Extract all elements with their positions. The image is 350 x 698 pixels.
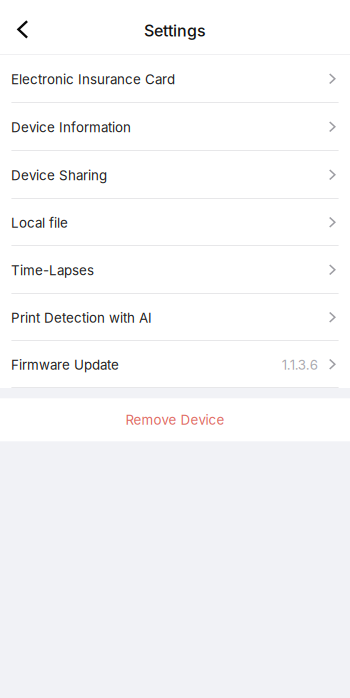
button[interactable]: Electronic Insurance Card xyxy=(0,55,350,103)
button[interactable]: Firmware Update xyxy=(0,341,350,388)
staticText: Print Detection with AI xyxy=(11,310,152,326)
button[interactable]: Remove Device xyxy=(0,398,350,441)
staticText: Remove Device xyxy=(125,412,224,428)
button[interactable]: Device Sharing xyxy=(0,151,350,199)
staticText: Local file xyxy=(11,215,68,231)
staticText: Electronic Insurance Card xyxy=(11,71,175,87)
staticText: Firmware Update xyxy=(11,357,119,373)
button[interactable]: Local file xyxy=(0,199,350,246)
staticText: Settings xyxy=(144,21,206,40)
staticText: 1.1.3.6 xyxy=(282,357,318,373)
staticText: Device Sharing xyxy=(11,167,107,183)
button[interactable]: Print Detection with AI xyxy=(0,294,350,341)
button[interactable]: Device Information xyxy=(0,103,350,151)
staticText: Device Information xyxy=(11,119,131,135)
staticText: Time-Lapses xyxy=(11,262,94,278)
button[interactable]: Back xyxy=(0,0,42,54)
button[interactable]: Time-Lapses xyxy=(0,246,350,294)
